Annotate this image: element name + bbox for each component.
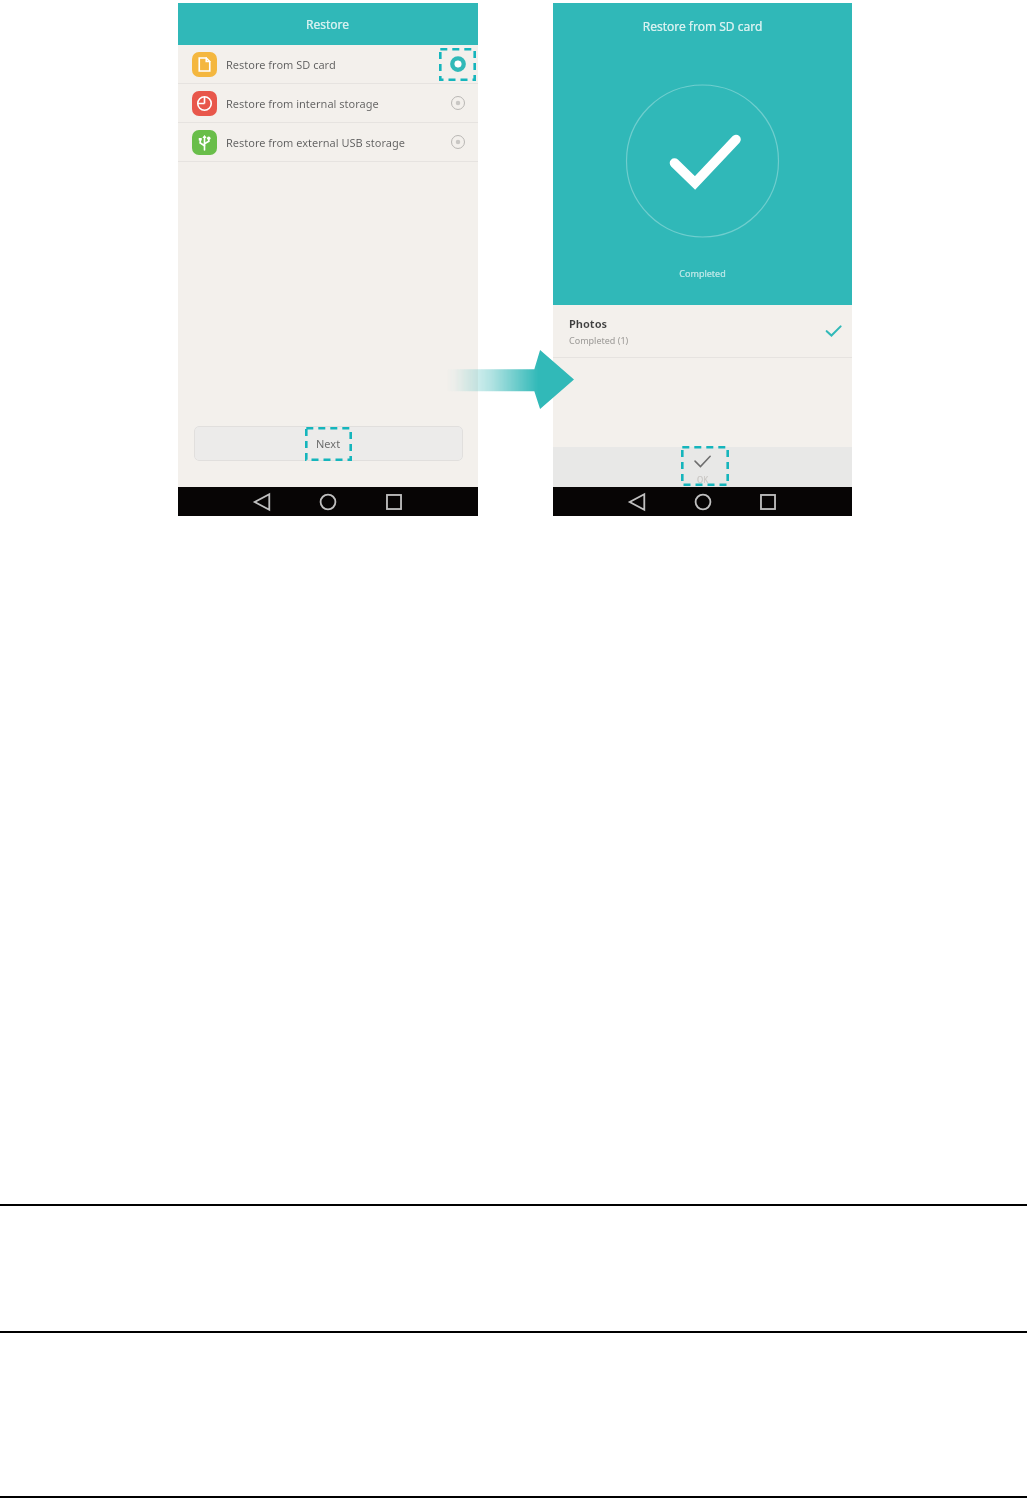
staticText: Restore from internal storage xyxy=(226,96,379,111)
button[interactable]: Restore from internal storage xyxy=(178,84,478,122)
staticText: Completed (1) xyxy=(569,334,629,346)
button[interactable]: Back xyxy=(624,489,650,515)
staticText: Completed xyxy=(553,267,852,279)
button[interactable]: Home xyxy=(315,489,341,515)
button[interactable]: Recents xyxy=(381,489,407,515)
button[interactable]: Home xyxy=(690,489,716,515)
button[interactable]: Restore from SD card xyxy=(178,45,478,83)
staticText: Restore from SD card xyxy=(553,18,852,34)
button[interactable]: Recents xyxy=(755,489,781,515)
staticText: Restore from external USB storage xyxy=(226,135,405,150)
button[interactable]: Restore from external USB storage xyxy=(178,123,478,161)
staticText: Photos xyxy=(569,316,608,331)
button[interactable]: Next xyxy=(194,426,463,461)
button[interactable]: Back xyxy=(249,489,275,515)
staticText: OK xyxy=(697,474,709,485)
staticText: Next xyxy=(316,436,341,451)
button[interactable]: Done xyxy=(553,447,852,487)
staticText: Restore xyxy=(306,16,350,32)
staticText: Restore from SD card xyxy=(226,57,336,72)
button[interactable]: Photos xyxy=(553,305,852,357)
